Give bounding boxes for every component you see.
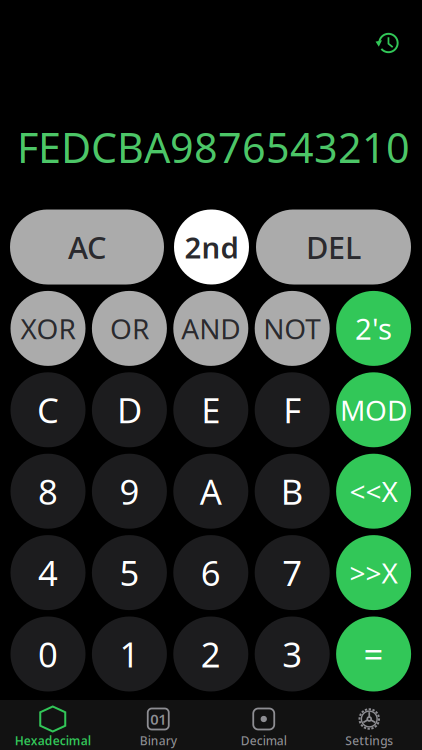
button[interactable]: AC bbox=[10, 209, 164, 284]
staticText: 4 bbox=[38, 550, 58, 596]
staticText: B bbox=[281, 468, 304, 514]
button[interactable]: 5 bbox=[92, 535, 167, 610]
staticText: Decimal bbox=[241, 732, 287, 748]
button[interactable]: XOR bbox=[10, 291, 85, 366]
button[interactable]: E bbox=[173, 372, 248, 447]
button[interactable]: DEL bbox=[256, 209, 411, 284]
staticText: NOT bbox=[263, 310, 321, 347]
button[interactable]: 6 bbox=[173, 535, 248, 610]
staticText: 8 bbox=[38, 468, 58, 514]
staticText: 1 bbox=[119, 631, 139, 677]
button[interactable]: Hexadecimal bbox=[0, 700, 105, 750]
staticText: 2nd bbox=[184, 227, 238, 266]
staticText: E bbox=[201, 387, 220, 433]
button[interactable]: 2nd bbox=[174, 209, 249, 284]
button[interactable]: <<X bbox=[336, 454, 411, 529]
button[interactable]: C bbox=[10, 372, 85, 447]
staticText: >>X bbox=[350, 554, 398, 591]
staticText: = bbox=[364, 631, 384, 677]
button[interactable]: MOD bbox=[336, 372, 411, 447]
staticText: 2's bbox=[355, 309, 392, 348]
staticText: MOD bbox=[340, 391, 407, 428]
button[interactable]: 8 bbox=[10, 454, 85, 529]
button[interactable]: AND bbox=[173, 291, 248, 366]
staticText: 0 bbox=[38, 631, 58, 677]
staticText: AC bbox=[68, 227, 106, 267]
staticText: FEDCBA9876543210 bbox=[17, 120, 410, 174]
button[interactable]: NOT bbox=[255, 291, 330, 366]
staticText: XOR bbox=[20, 310, 75, 347]
button[interactable]: B bbox=[255, 454, 330, 529]
staticText: Settings bbox=[345, 732, 393, 748]
button[interactable]: 2's bbox=[336, 291, 411, 366]
staticText: <<X bbox=[350, 473, 398, 510]
staticText: DEL bbox=[306, 227, 361, 267]
button[interactable]: 7 bbox=[255, 535, 330, 610]
button[interactable]: Decimal bbox=[211, 700, 316, 750]
button[interactable]: = bbox=[336, 616, 411, 691]
button[interactable]: 2 bbox=[173, 616, 248, 691]
button[interactable]: 4 bbox=[10, 535, 85, 610]
staticText: 9 bbox=[119, 468, 139, 514]
button[interactable]: D bbox=[92, 372, 167, 447]
staticText: Binary bbox=[140, 732, 177, 748]
staticText: 3 bbox=[282, 631, 302, 677]
button[interactable]: A bbox=[173, 454, 248, 529]
button[interactable]: F bbox=[255, 372, 330, 447]
staticText: 7 bbox=[282, 550, 302, 596]
staticText: Hexadecimal bbox=[15, 732, 91, 748]
button[interactable]: 1 bbox=[92, 616, 167, 691]
button[interactable]: >>X bbox=[336, 535, 411, 610]
staticText: F bbox=[283, 387, 301, 433]
staticText: 6 bbox=[201, 550, 221, 596]
staticText: 01 bbox=[150, 709, 166, 729]
button[interactable]: 3 bbox=[255, 616, 330, 691]
button[interactable]: History bbox=[366, 21, 410, 65]
button[interactable]: 01 bbox=[105, 700, 211, 750]
staticText: C bbox=[37, 387, 59, 433]
staticText: 2 bbox=[201, 631, 221, 677]
button[interactable]: Settings bbox=[316, 700, 422, 750]
button[interactable]: 9 bbox=[92, 454, 167, 529]
staticText: D bbox=[117, 387, 142, 433]
staticText: OR bbox=[110, 310, 149, 347]
button[interactable]: 0 bbox=[10, 616, 85, 691]
button[interactable]: OR bbox=[92, 291, 167, 366]
staticText: AND bbox=[181, 310, 240, 347]
staticText: A bbox=[200, 468, 222, 514]
staticText: 5 bbox=[119, 550, 139, 596]
